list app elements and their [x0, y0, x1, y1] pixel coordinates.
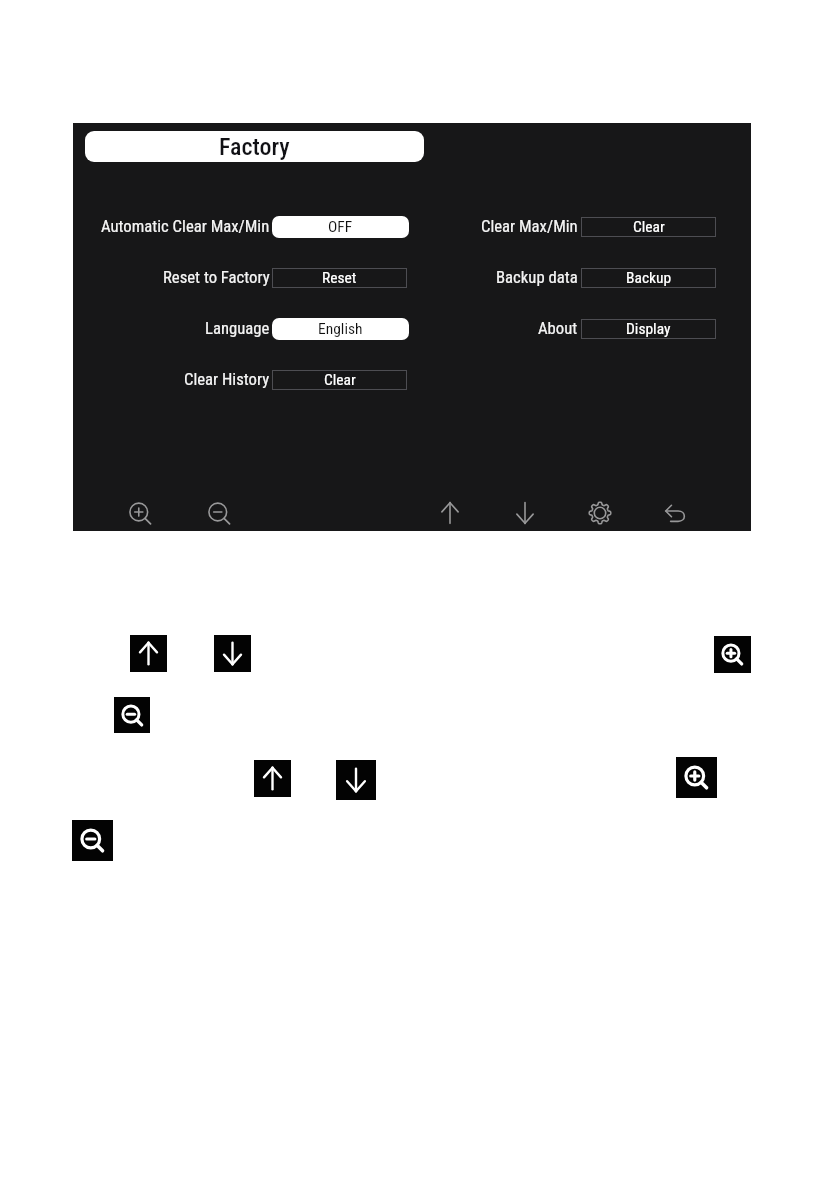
staticText: Display: [626, 320, 671, 338]
button[interactable]: English: [272, 318, 409, 340]
button[interactable]: Zoom out: [72, 820, 113, 861]
button[interactable]: Clear: [272, 370, 407, 390]
button[interactable]: Factory: [85, 131, 424, 162]
button[interactable]: Display: [581, 319, 716, 339]
staticText: Factory: [219, 133, 290, 161]
button[interactable]: Settings: [583, 496, 617, 530]
button[interactable]: Reset: [272, 268, 407, 288]
button[interactable]: Zoom in: [676, 757, 717, 798]
button[interactable]: Scroll down: [336, 760, 376, 800]
button[interactable]: Scroll down: [214, 635, 251, 672]
button[interactable]: Zoom in: [714, 636, 751, 673]
staticText: Reset to Factory: [163, 268, 270, 288]
button[interactable]: Clear: [581, 217, 716, 237]
button[interactable]: Zoom out: [202, 496, 236, 530]
staticText: Clear: [633, 218, 665, 236]
staticText: About: [538, 319, 578, 339]
button[interactable]: Back: [658, 496, 692, 530]
button[interactable]: Scroll down: [508, 496, 542, 530]
button[interactable]: Scroll up: [433, 496, 467, 530]
staticText: Automatic Clear Max/Min: [101, 217, 270, 237]
button[interactable]: Backup: [581, 268, 716, 288]
staticText: Clear: [324, 371, 356, 389]
button[interactable]: Scroll up: [254, 760, 291, 797]
button[interactable]: Scroll up: [130, 635, 167, 672]
staticText: Backup: [626, 269, 672, 287]
staticText: OFF: [328, 218, 353, 236]
staticText: Clear Max/Min: [481, 217, 578, 237]
staticText: Reset: [322, 269, 357, 287]
staticText: Clear History: [184, 370, 270, 390]
staticText: Language: [205, 319, 270, 339]
staticText: Backup data: [496, 268, 578, 288]
staticText: English: [318, 320, 363, 338]
button[interactable]: Zoom out: [114, 697, 150, 733]
button[interactable]: Zoom in: [123, 496, 157, 530]
button[interactable]: OFF: [272, 216, 409, 238]
